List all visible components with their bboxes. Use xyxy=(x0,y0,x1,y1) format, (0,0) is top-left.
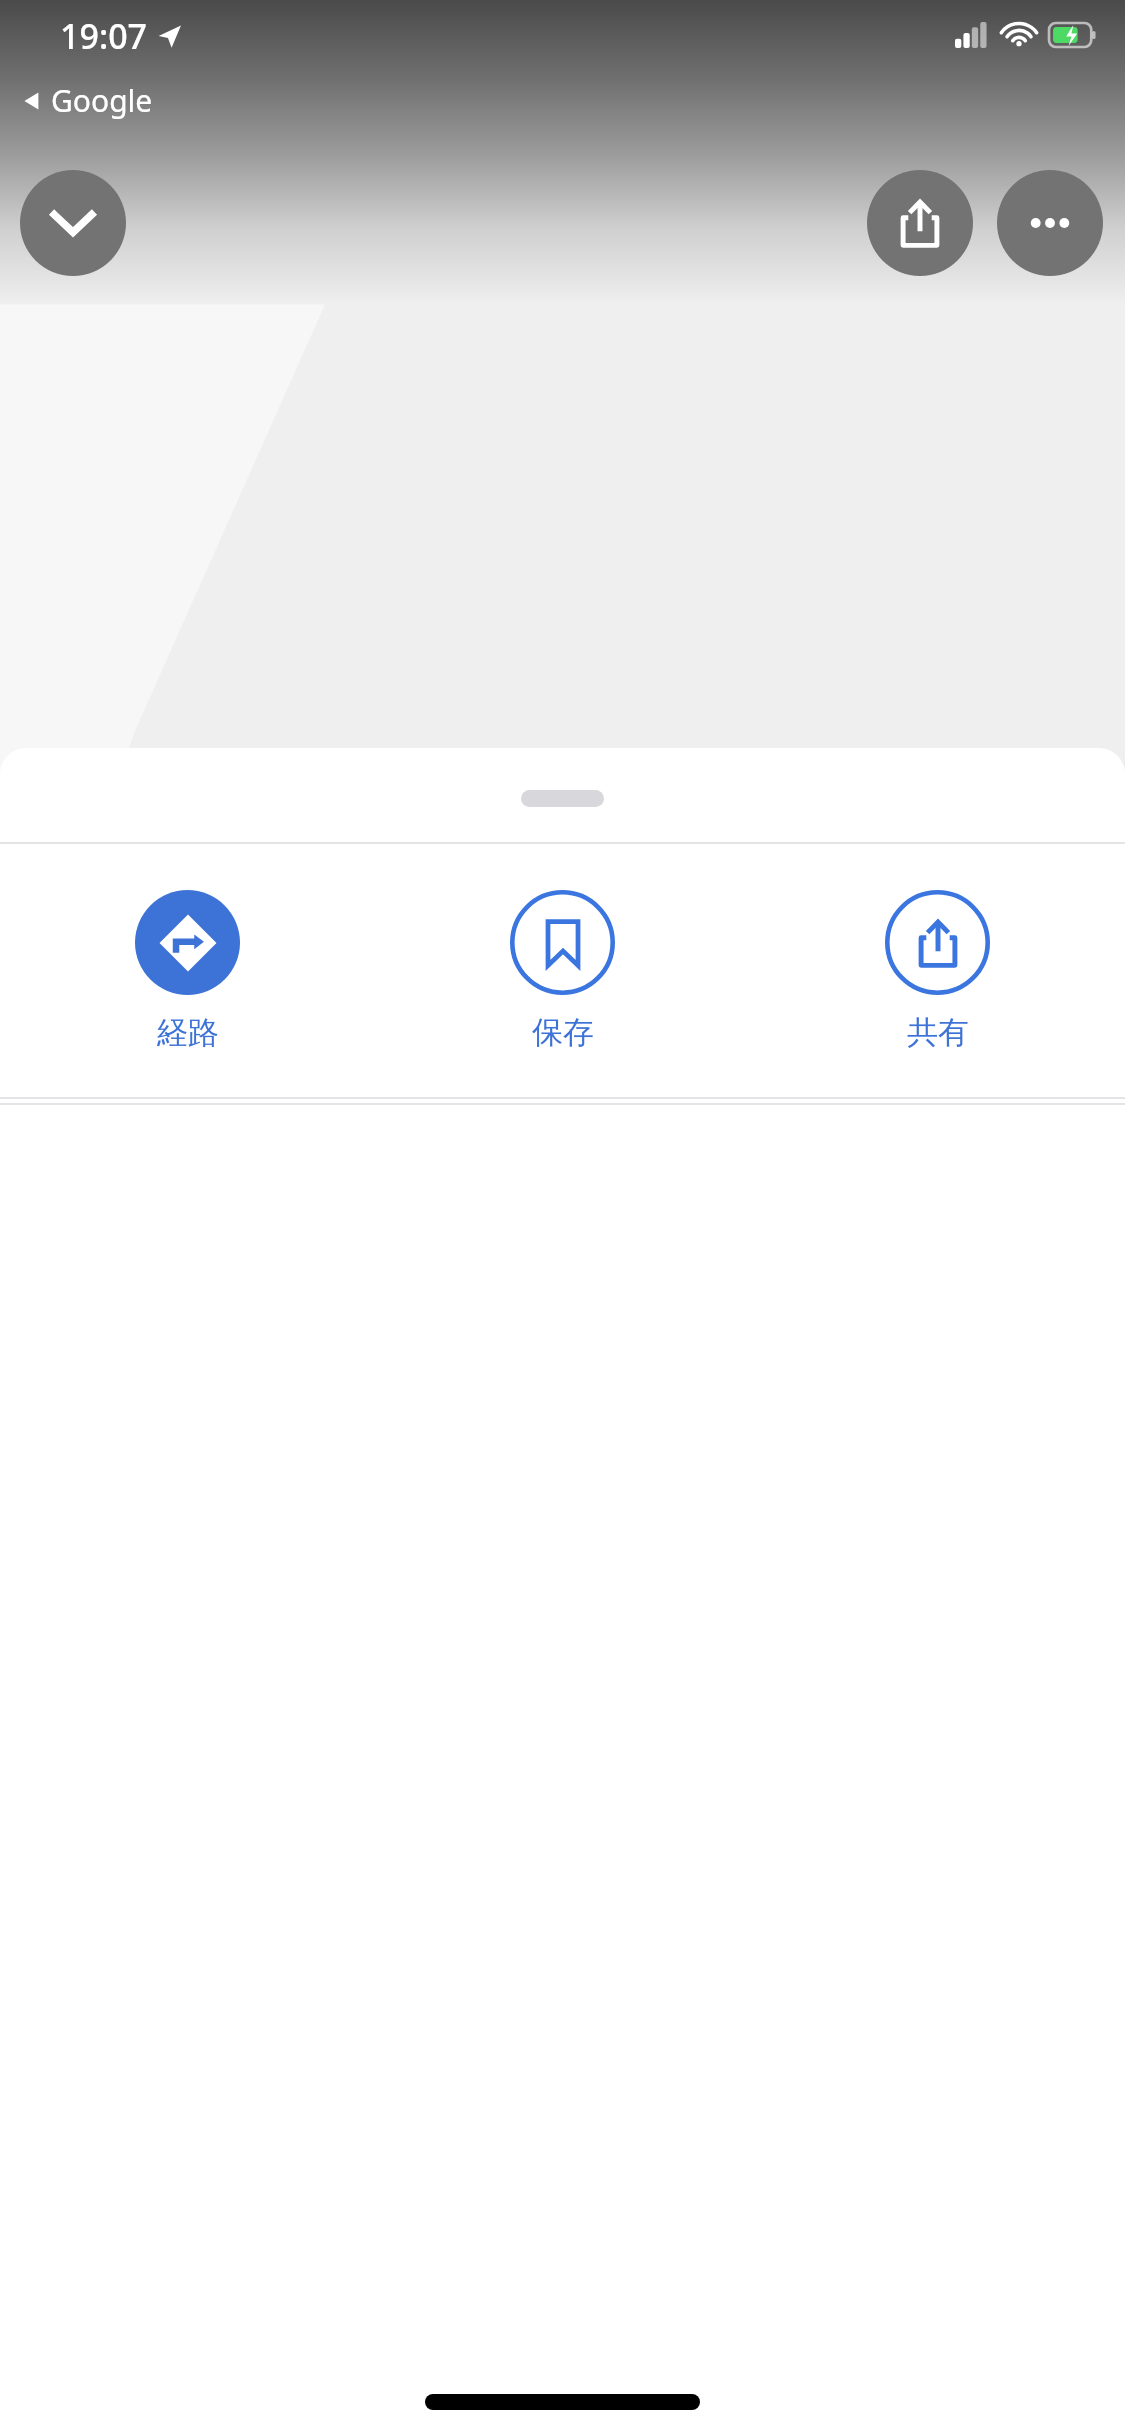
button[interactable]: 共有 xyxy=(750,844,1125,1097)
staticText: 保存 xyxy=(532,1013,594,1052)
button[interactable]: 経路 xyxy=(0,844,375,1097)
button[interactable]: More options xyxy=(997,170,1103,276)
button[interactable]: Close xyxy=(20,170,126,276)
button[interactable]: Google xyxy=(22,80,153,121)
staticText: Google xyxy=(51,80,153,121)
button[interactable]: 保存 xyxy=(375,844,750,1097)
button[interactable]: Share xyxy=(867,170,973,276)
staticText: 共有 xyxy=(907,1013,969,1052)
staticText: 19:07 xyxy=(60,13,148,59)
staticText: 経路 xyxy=(157,1013,219,1052)
